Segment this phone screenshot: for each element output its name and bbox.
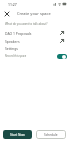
staticText: What do you want to talk about? xyxy=(5,22,48,26)
staticText: Record this space xyxy=(5,54,27,58)
staticText: DAO 1 Proposals xyxy=(5,31,32,36)
staticText: Start Now xyxy=(10,133,25,137)
button[interactable]: Settings xyxy=(0,45,69,61)
button[interactable]: Open Speakers xyxy=(60,39,64,43)
button[interactable]: Open DAO 1 Proposals xyxy=(60,31,64,35)
button[interactable]: Schedule xyxy=(36,130,66,139)
staticText: 11:27 xyxy=(8,2,17,7)
staticText: Create your space xyxy=(17,11,51,16)
button[interactable]: Record this space toggle xyxy=(57,54,67,59)
button[interactable]: DAO 1 Proposals xyxy=(0,29,69,37)
button[interactable]: Close xyxy=(3,10,11,18)
button[interactable]: Start Now xyxy=(3,130,32,139)
staticText: Speakers xyxy=(5,39,20,44)
staticText: Schedule xyxy=(44,133,58,137)
button[interactable]: Speakers xyxy=(0,37,69,45)
staticText: Settings xyxy=(5,46,18,51)
